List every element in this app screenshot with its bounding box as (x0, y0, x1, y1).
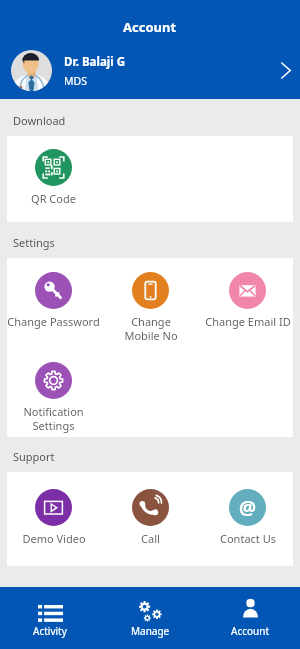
staticText: Dr. Balaji G (64, 54, 125, 70)
staticText: Contact Us (220, 531, 276, 546)
button[interactable]: Manage (100, 587, 200, 649)
staticText: @ (239, 495, 257, 521)
staticText: Change Mobile No (124, 314, 178, 343)
staticText: QR Code (31, 191, 76, 206)
button[interactable]: Activity (0, 587, 100, 649)
staticText: Account (123, 18, 177, 36)
staticText: Notification Settings (23, 404, 84, 433)
staticText: Support (13, 449, 55, 464)
button[interactable]: @ (199, 472, 293, 546)
staticText: Demo Video (22, 531, 86, 546)
button[interactable]: Open profile (272, 42, 300, 99)
button[interactable]: Change Mobile No (102, 258, 199, 343)
button[interactable]: Demo Video (7, 472, 102, 546)
staticText: Settings (13, 235, 55, 250)
staticText: Manage (131, 624, 170, 638)
button[interactable]: Call (102, 472, 199, 546)
button[interactable]: Notification Settings (7, 348, 102, 433)
staticText: Account (231, 624, 270, 638)
button[interactable]: Account (200, 587, 300, 649)
staticText: Change Email ID (205, 314, 291, 329)
staticText: Download (13, 113, 66, 128)
staticText: MDS (64, 74, 87, 88)
button[interactable]: Dr. Balaji G (0, 42, 300, 99)
staticText: Call (141, 531, 160, 546)
staticText: Activity (33, 624, 67, 638)
staticText: Change Password (7, 314, 100, 329)
button[interactable]: Change Password (7, 258, 102, 329)
button[interactable]: QR Code (7, 136, 102, 206)
button[interactable]: Change Email ID (199, 258, 293, 329)
